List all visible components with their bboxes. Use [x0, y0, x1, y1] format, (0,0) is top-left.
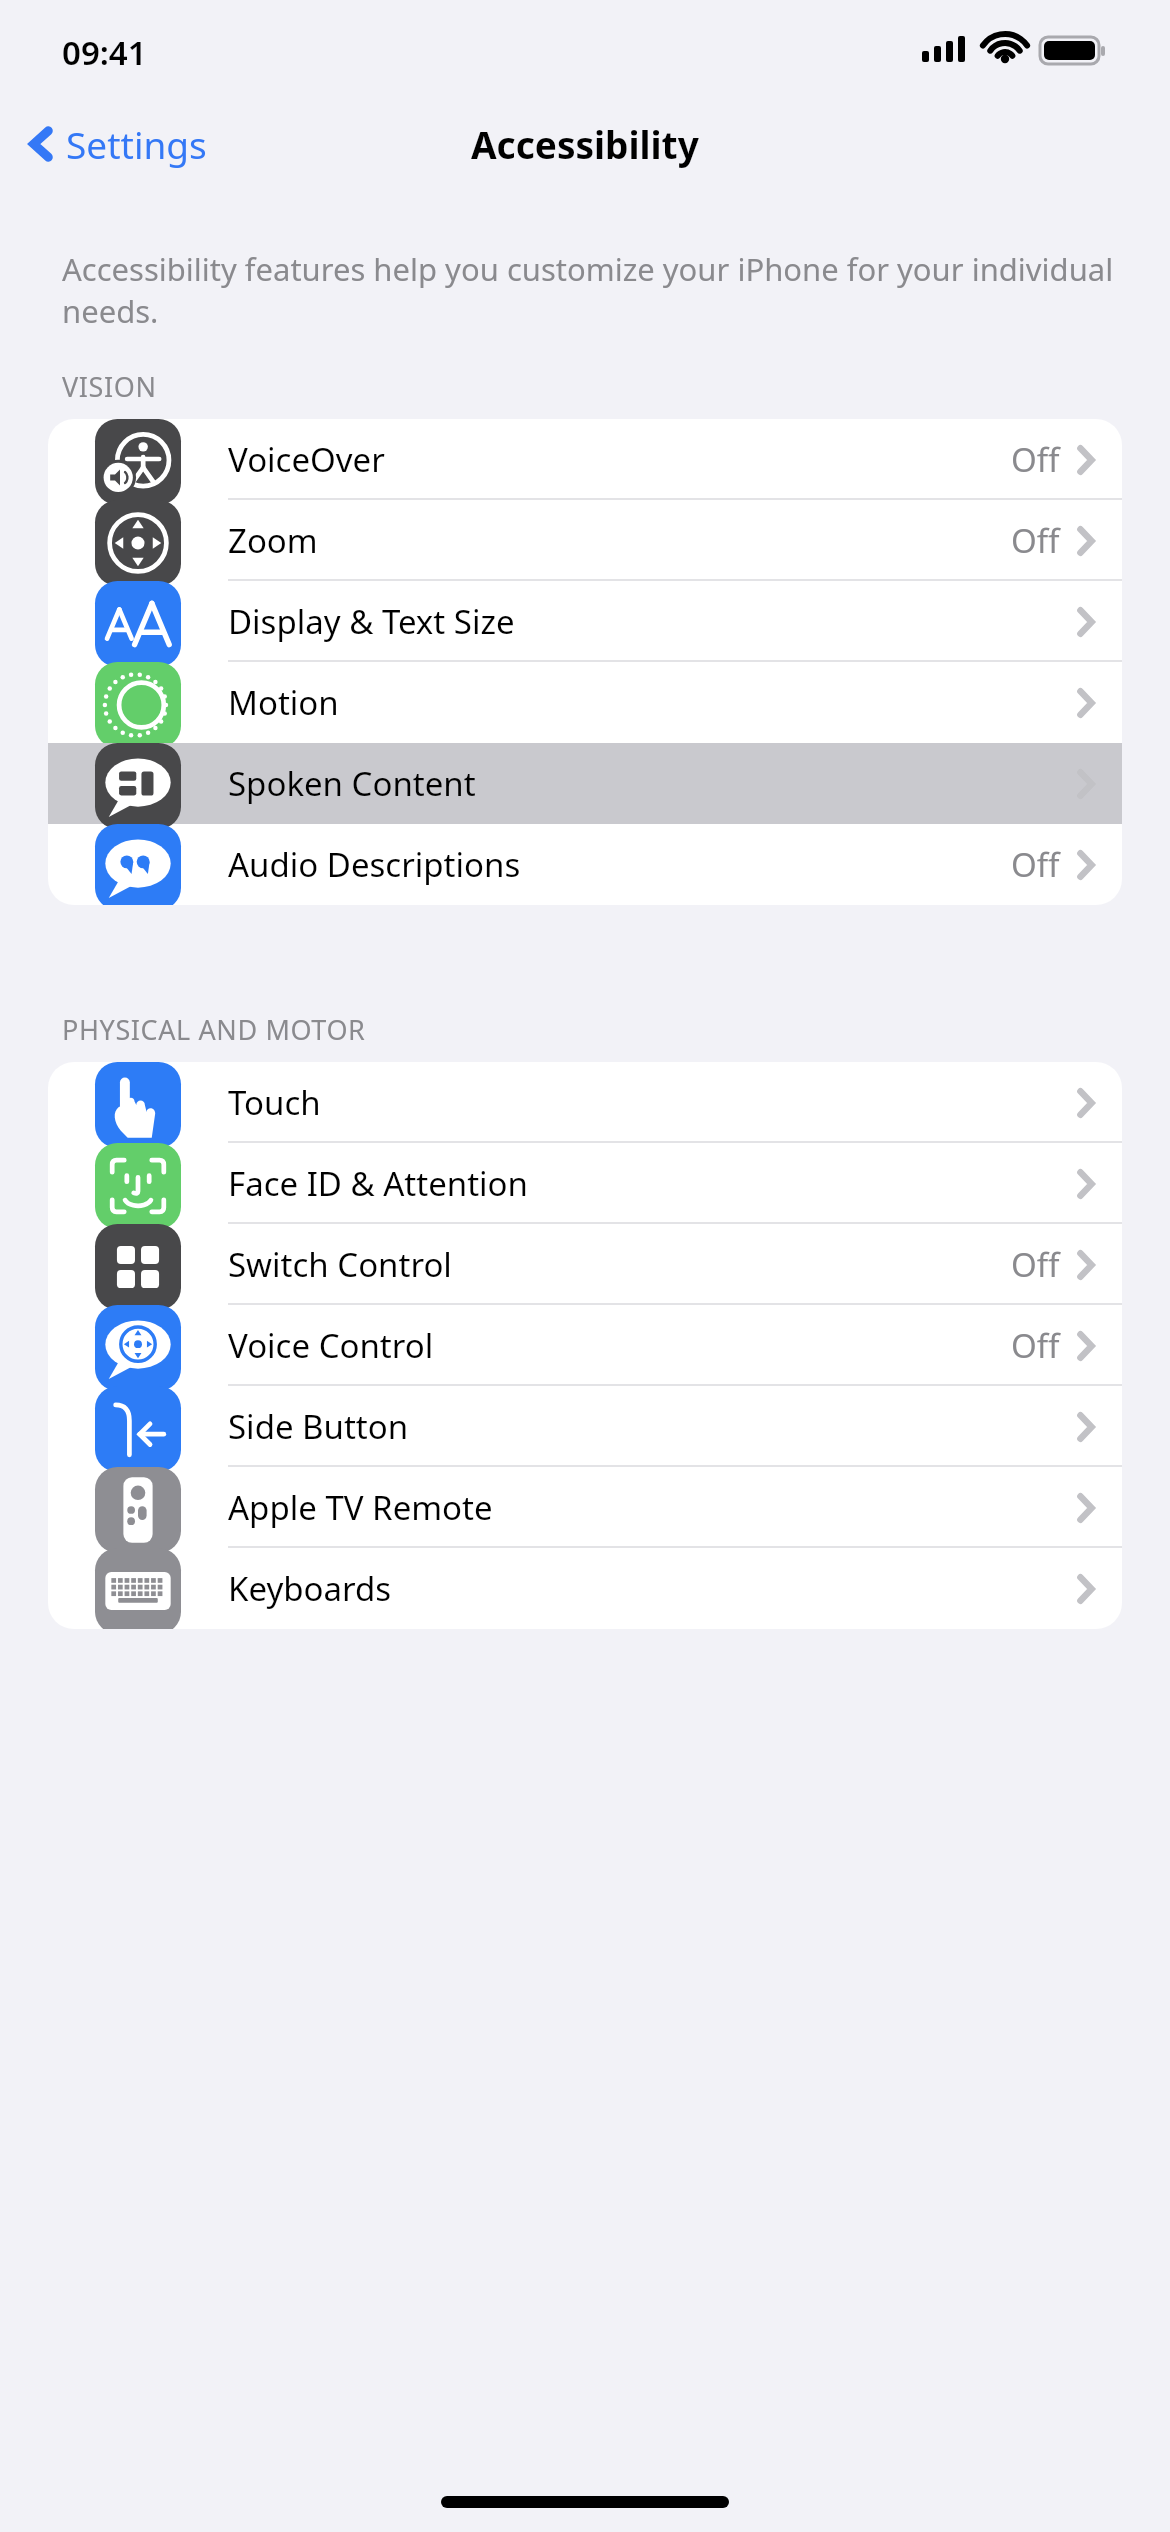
button[interactable]: Switch Control	[48, 1224, 1122, 1305]
staticText: Side Button	[228, 1404, 409, 1449]
staticText: Accessibility	[471, 119, 699, 169]
staticText: Motion	[228, 680, 339, 725]
staticText: Display & Text Size	[228, 599, 515, 644]
staticText: Spoken Content	[228, 761, 476, 806]
staticText: Face ID & Attention	[228, 1161, 528, 1206]
staticText: Switch Control	[228, 1242, 452, 1287]
staticText: Off	[1011, 1323, 1060, 1368]
button[interactable]: Display & Text Size	[48, 581, 1122, 662]
staticText: Off	[1011, 518, 1060, 563]
button[interactable]: Face ID & Attention	[48, 1143, 1122, 1224]
button[interactable]: Voice Control	[48, 1305, 1122, 1386]
staticText: Settings	[66, 119, 207, 169]
staticText: Accessibility features help you customiz…	[62, 248, 1114, 332]
button[interactable]: Audio Descriptions	[48, 824, 1122, 905]
button[interactable]: Settings	[20, 113, 215, 175]
button[interactable]: Apple TV Remote	[48, 1467, 1122, 1548]
staticText: Off	[1011, 437, 1060, 482]
button[interactable]: Zoom	[48, 500, 1122, 581]
staticText: VISION	[62, 368, 157, 405]
staticText: VoiceOver	[228, 437, 385, 482]
staticText: PHYSICAL AND MOTOR	[62, 1011, 366, 1048]
button[interactable]: Keyboards	[48, 1548, 1122, 1629]
button[interactable]: Spoken Content	[48, 743, 1122, 824]
staticText: Touch	[228, 1080, 321, 1125]
staticText: Voice Control	[228, 1323, 434, 1368]
button[interactable]: Side Button	[48, 1386, 1122, 1467]
button[interactable]: Touch	[48, 1062, 1122, 1143]
staticText: Off	[1011, 1242, 1060, 1287]
button[interactable]: VoiceOver	[48, 419, 1122, 500]
staticText: Off	[1011, 842, 1060, 887]
button[interactable]: Motion	[48, 662, 1122, 743]
staticText: Keyboards	[228, 1566, 392, 1611]
staticText: Apple TV Remote	[228, 1485, 493, 1530]
staticText: Zoom	[228, 518, 318, 563]
staticText: Audio Descriptions	[228, 842, 521, 887]
staticText: 09:41	[62, 30, 147, 75]
